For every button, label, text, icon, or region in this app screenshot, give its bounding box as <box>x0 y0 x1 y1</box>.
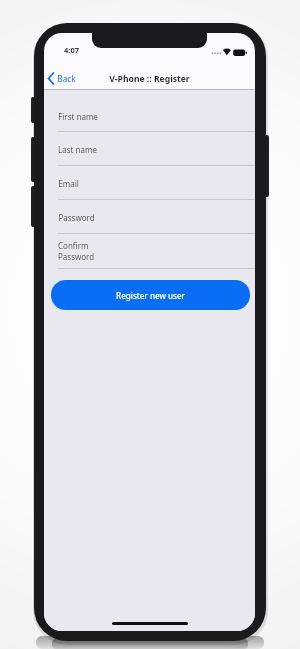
staticText: 4:07 <box>64 45 79 55</box>
button[interactable]: Back <box>44 70 88 87</box>
staticText: Back <box>57 73 76 84</box>
staticText: Last name <box>58 144 97 155</box>
button[interactable]: Register new user <box>51 280 250 310</box>
staticText: Confirm Password <box>58 240 95 262</box>
staticText: V-Phone :: Register <box>109 73 190 85</box>
staticText: Register new user <box>116 290 185 301</box>
staticText: Password <box>58 212 95 223</box>
staticText: Email <box>58 178 79 189</box>
staticText: First name <box>58 111 98 122</box>
